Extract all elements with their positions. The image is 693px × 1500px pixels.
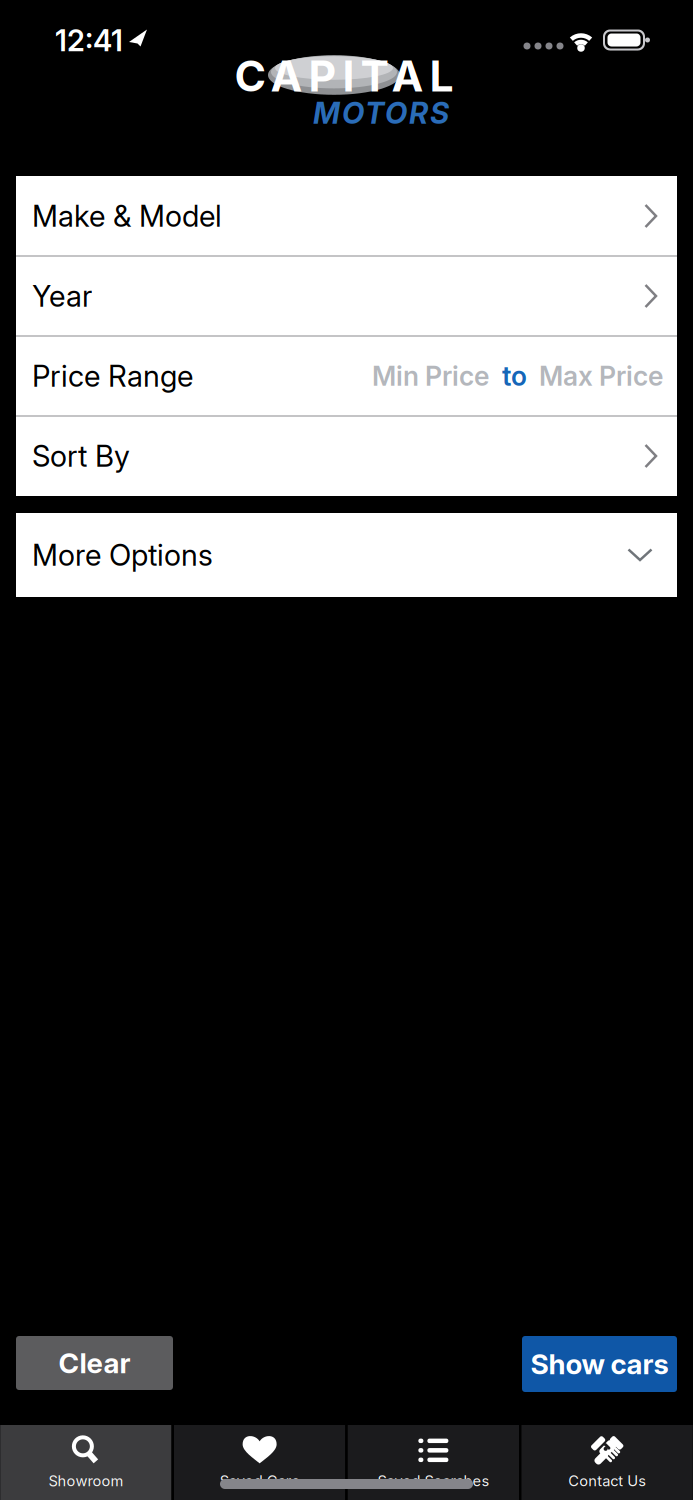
button[interactable]: Saved Searches	[348, 1425, 519, 1500]
button[interactable]: Sort By	[16, 416, 677, 496]
staticText: Max Price	[539, 360, 663, 392]
staticText: Saved Searches	[377, 1472, 489, 1490]
button[interactable]: Clear	[16, 1336, 173, 1390]
button[interactable]: Saved Cars	[174, 1425, 345, 1500]
button[interactable]: Price Range	[16, 336, 677, 416]
staticText: MOTORS	[313, 96, 449, 130]
button[interactable]: Year	[16, 256, 677, 336]
staticText: Contact Us	[568, 1472, 646, 1490]
staticText: Clear	[58, 1346, 130, 1379]
button[interactable]: Show cars	[522, 1336, 677, 1392]
staticText: to	[502, 360, 527, 392]
staticText: Saved Cars	[220, 1472, 300, 1490]
staticText: Show cars	[530, 1347, 668, 1380]
button[interactable]: Contact Us	[521, 1425, 693, 1500]
staticText: Make & Model	[32, 199, 222, 233]
button[interactable]: Make & Model	[16, 176, 677, 256]
staticText: Year	[32, 279, 92, 313]
staticText: More Options	[32, 538, 213, 572]
staticText: Min Price	[372, 360, 489, 392]
staticText: 12:41	[55, 23, 123, 58]
staticText: CAPITAL	[234, 51, 453, 101]
button[interactable]: Showroom	[0, 1425, 171, 1500]
staticText: Sort By	[32, 439, 130, 473]
staticText: Showroom	[48, 1472, 123, 1490]
staticText: Price Range	[32, 359, 193, 393]
button[interactable]: More Options	[16, 513, 677, 597]
